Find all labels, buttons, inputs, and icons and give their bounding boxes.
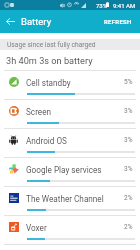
staticText: 3% — [124, 107, 133, 115]
button[interactable]: Cell standby — [0, 71, 140, 100]
button[interactable]: Google Play services — [0, 158, 140, 187]
button[interactable]: Android OS — [0, 129, 140, 158]
staticText: REFRESH — [104, 18, 132, 25]
staticText: Screen — [26, 107, 52, 117]
staticText: Usage since last fully charged — [7, 41, 96, 49]
button[interactable]: The Weather Channel — [0, 187, 140, 216]
staticText: Voxer — [26, 223, 47, 233]
button[interactable]: Screen — [0, 100, 140, 129]
button[interactable]: Back — [0, 10, 20, 33]
staticText: Google Play services — [26, 165, 102, 175]
staticText: 2% — [124, 223, 133, 231]
staticText: 2% — [124, 194, 133, 202]
staticText: 73% — [96, 2, 108, 9]
staticText: 3% — [124, 165, 133, 173]
button[interactable]: Voxer — [0, 216, 140, 245]
staticText: The Weather Channel — [26, 194, 104, 204]
staticText: 3h 40m 3s on battery — [6, 55, 93, 66]
staticText: Android OS — [26, 136, 67, 146]
button[interactable]: REFRESH — [96, 13, 140, 30]
staticText: 9:41 AM — [113, 2, 136, 9]
staticText: Battery — [21, 16, 52, 27]
staticText: Cell standby — [26, 78, 71, 88]
staticText: 3% — [124, 136, 133, 144]
staticText: 5% — [124, 78, 133, 86]
